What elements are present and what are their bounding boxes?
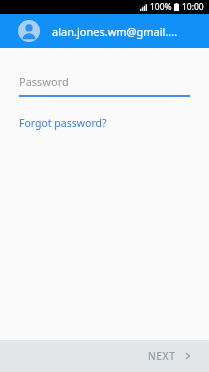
button[interactable]: alan.jones.wm@gmail.... — [18, 14, 199, 48]
button[interactable]: Forgot password? — [19, 116, 107, 130]
button[interactable]: Password — [19, 74, 190, 97]
staticText: Password — [19, 74, 69, 89]
other: Next — [184, 352, 192, 360]
staticText: alan.jones.wm@gmail.... — [52, 24, 178, 39]
staticText: Forgot password? — [19, 116, 107, 130]
staticText: 100% — [150, 1, 172, 13]
button[interactable]: NEXT — [144, 345, 196, 367]
staticText: NEXT — [148, 349, 176, 363]
staticText: 10:00 — [182, 1, 204, 13]
